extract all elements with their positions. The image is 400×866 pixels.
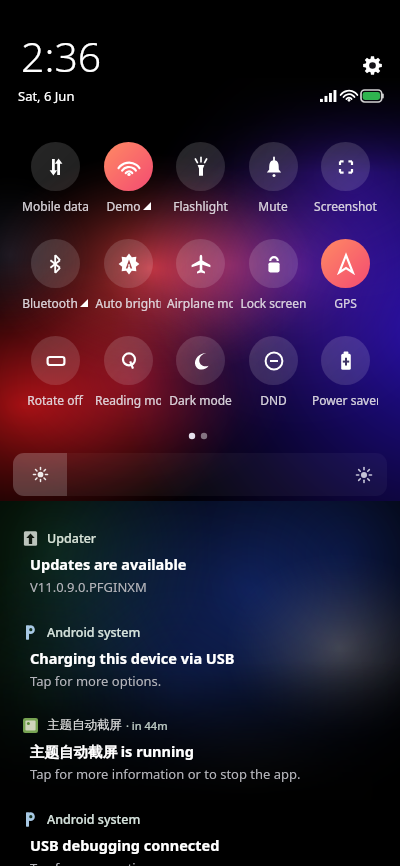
staticText: Lock screen: [240, 295, 306, 311]
button[interactable]: Flashlight: [164, 142, 236, 222]
staticText: Power saver: [312, 392, 378, 408]
button[interactable]: Reading mode: [92, 336, 164, 416]
button[interactable]: Demo: [92, 142, 164, 222]
staticText: Android system: [47, 624, 141, 640]
staticText: Tap for more options.: [30, 859, 162, 866]
button[interactable]: Mobile data: [19, 142, 91, 222]
button[interactable]: Auto brightness: [92, 239, 164, 319]
button[interactable]: Power saver: [309, 336, 381, 416]
staticText: Screenshot: [314, 198, 377, 214]
button[interactable]: Updater: [0, 524, 400, 610]
button[interactable]: GPS: [309, 239, 381, 319]
staticText: Airplane mode: [167, 295, 233, 311]
button[interactable]: Dark mode: [164, 336, 236, 416]
staticText: Updater: [47, 530, 97, 546]
staticText: V11.0.9.0.PFGINXM: [30, 578, 147, 596]
button[interactable]: Bluetooth: [19, 239, 91, 319]
staticText: Tap for more options.: [30, 672, 162, 690]
staticText: Reading mode: [95, 392, 161, 408]
staticText: · in 44m: [126, 718, 168, 733]
staticText: Mobile data: [22, 198, 88, 214]
staticText: Dark mode: [169, 392, 232, 408]
staticText: Auto brightness: [95, 295, 161, 311]
staticText: Bluetooth: [22, 295, 78, 311]
button[interactable]: Lock screen: [237, 239, 309, 319]
button[interactable]: Screenshot: [309, 142, 381, 222]
button[interactable]: Android system: [0, 805, 400, 866]
staticText: 主题自动截屏: [47, 717, 122, 733]
staticText: Updates are available: [30, 554, 187, 574]
button[interactable]: Brightness: [13, 453, 387, 496]
button[interactable]: DND: [237, 336, 309, 416]
button[interactable]: Airplane mode: [164, 239, 236, 319]
staticText: Mute: [258, 198, 288, 214]
staticText: 主题自动截屏 is running: [30, 741, 194, 761]
staticText: Charging this device via USB: [30, 648, 235, 668]
staticText: 2:36: [21, 28, 102, 84]
button[interactable]: Rotate off: [19, 336, 91, 416]
button[interactable]: 主题自动截屏: [0, 711, 400, 797]
staticText: Tap for more information or to stop the …: [30, 765, 301, 783]
staticText: GPS: [334, 295, 357, 311]
staticText: Flashlight: [173, 198, 228, 214]
button[interactable]: Android system: [0, 618, 400, 704]
staticText: Sat, 6 Jun: [18, 87, 75, 105]
button[interactable]: Mute: [237, 142, 309, 222]
button[interactable]: Settings: [358, 51, 386, 79]
staticText: Demo: [106, 198, 141, 214]
staticText: USB debugging connected: [30, 835, 220, 855]
staticText: Rotate off: [27, 392, 83, 408]
staticText: DND: [260, 392, 287, 408]
staticText: Android system: [47, 811, 141, 827]
